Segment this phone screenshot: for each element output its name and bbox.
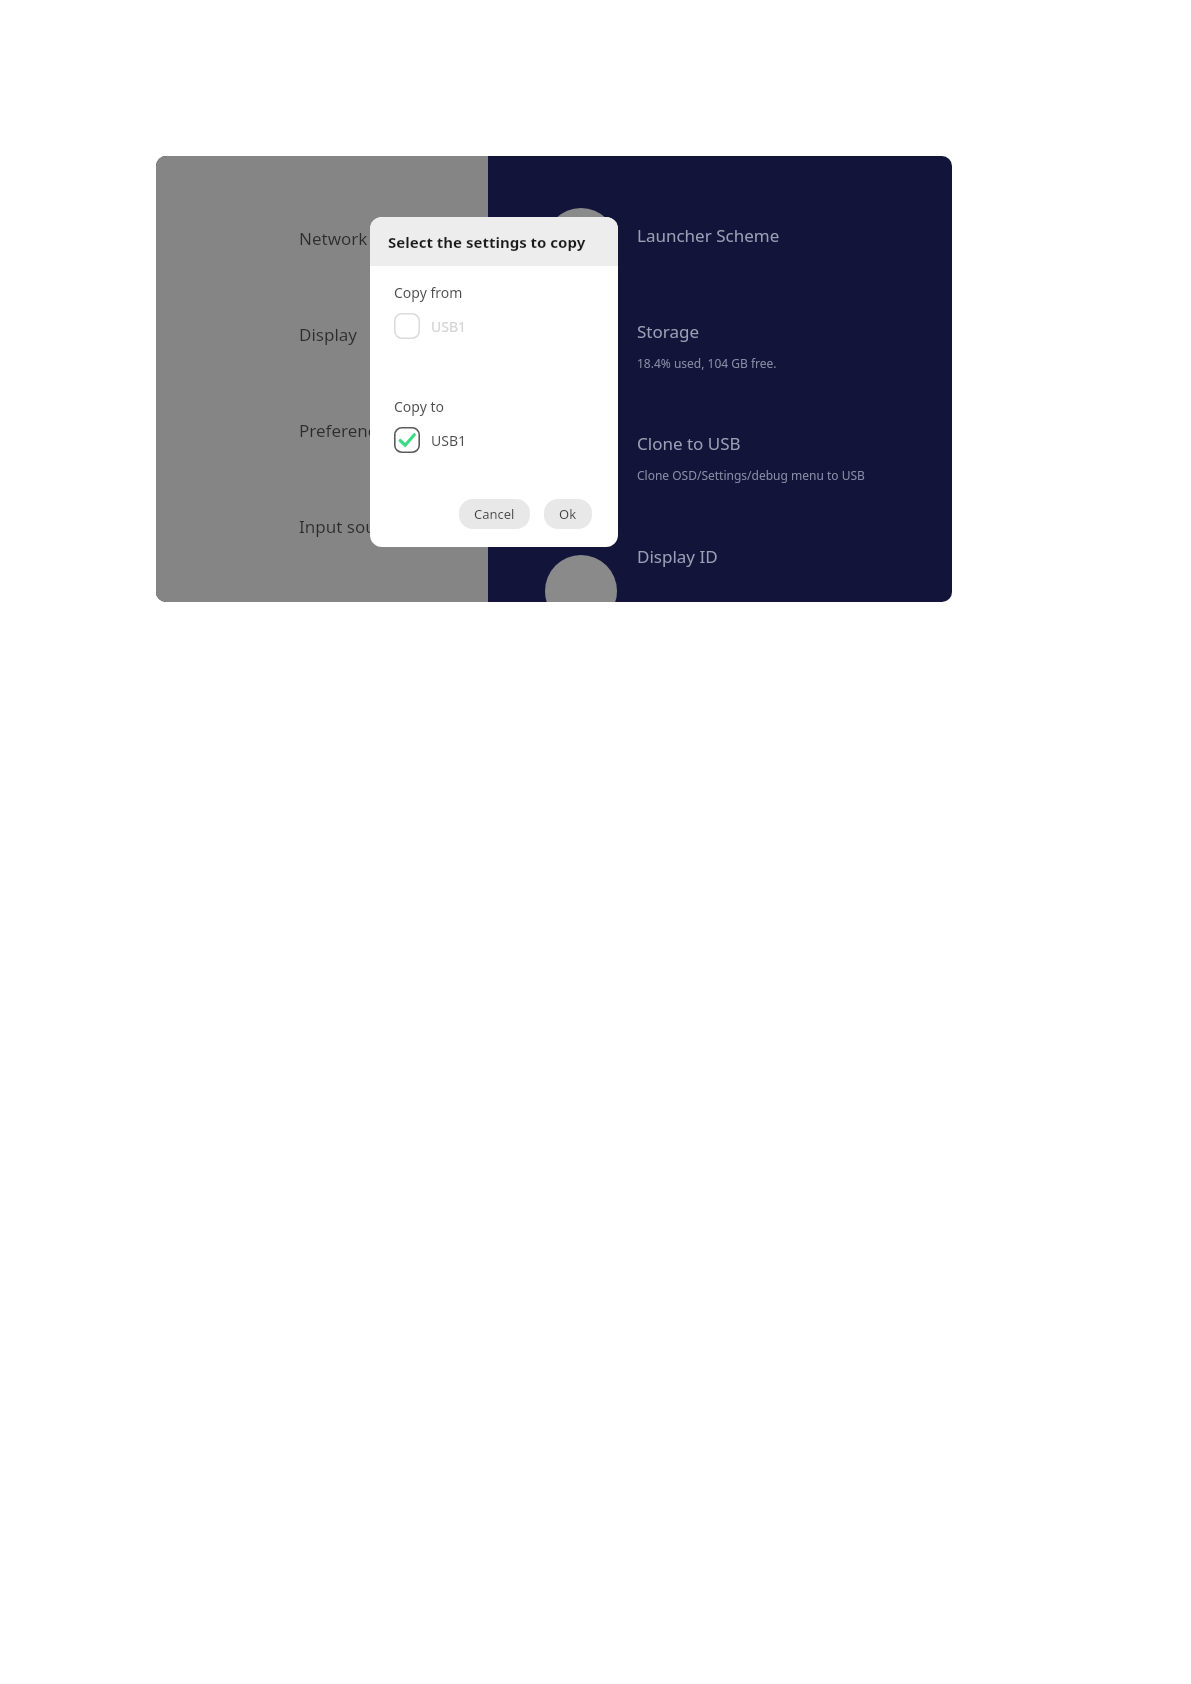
button[interactable]: Preferences bbox=[299, 406, 488, 454]
button[interactable]: Clone to USB bbox=[637, 429, 952, 501]
staticText: Display bbox=[299, 323, 357, 346]
staticText: USB1 bbox=[431, 431, 467, 450]
staticText: Input source bbox=[299, 515, 401, 538]
staticText: Ok bbox=[559, 505, 577, 523]
staticText: Preferences bbox=[299, 419, 394, 442]
staticText: Storage bbox=[637, 320, 700, 343]
staticText: Display ID bbox=[637, 545, 718, 568]
button[interactable]: USB1 bbox=[394, 423, 467, 457]
staticText: Copy to bbox=[394, 397, 444, 416]
button[interactable]: Launcher Scheme bbox=[637, 221, 952, 265]
button[interactable]: Network bbox=[299, 214, 488, 262]
staticText: Cancel bbox=[474, 505, 515, 523]
other: Display icon bbox=[545, 555, 617, 602]
staticText: Launcher Scheme bbox=[637, 224, 780, 247]
staticText: Network bbox=[299, 227, 368, 250]
staticText: Clone to USB bbox=[637, 432, 741, 455]
staticText: Select the settings to copy bbox=[388, 232, 586, 252]
button[interactable]: USB1 bbox=[394, 309, 467, 343]
staticText: Clone OSD/Settings/debug menu to USB bbox=[637, 467, 865, 483]
staticText: Copy from bbox=[394, 283, 463, 302]
button[interactable]: Ok bbox=[544, 499, 592, 529]
staticText: USB1 bbox=[431, 317, 467, 336]
staticText: 18.4% used, 104 GB free. bbox=[637, 355, 777, 371]
button[interactable]: Input source bbox=[299, 502, 488, 550]
button[interactable]: Display ID bbox=[637, 542, 952, 586]
button[interactable]: Display bbox=[299, 310, 488, 358]
button[interactable]: Cancel bbox=[459, 499, 530, 529]
button[interactable]: Storage bbox=[637, 317, 952, 389]
